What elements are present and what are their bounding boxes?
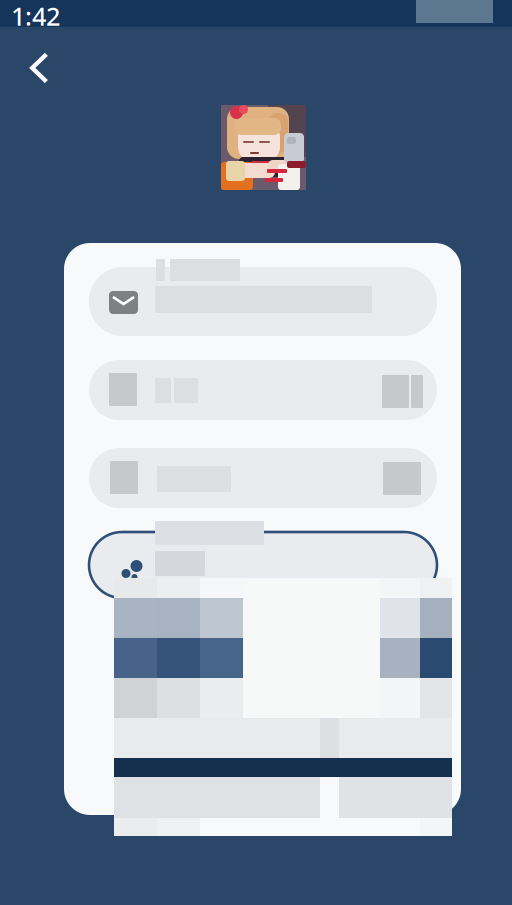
staticText: 1:42	[11, 0, 60, 33]
button[interactable]: Back	[20, 45, 68, 91]
